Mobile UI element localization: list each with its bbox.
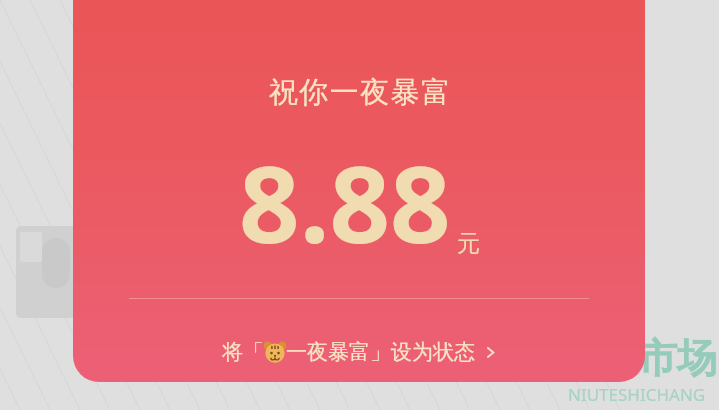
staticText: NIUTESHICHANG (568, 383, 706, 406)
button[interactable]: 将「 (210, 332, 509, 372)
staticText: 牛特市场 (557, 333, 717, 383)
staticText: 祝你一夜暴富 (268, 74, 451, 111)
staticText: 一夜暴富」设为状态 (286, 339, 475, 365)
staticText: 8.88 (239, 130, 451, 274)
other: Tiger emoji (264, 341, 286, 363)
staticText: 元 (457, 229, 480, 258)
staticText: 将「 (222, 339, 264, 365)
